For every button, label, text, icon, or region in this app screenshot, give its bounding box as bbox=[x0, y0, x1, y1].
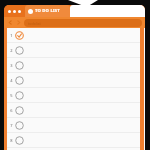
button[interactable]: 3 bbox=[7, 58, 141, 73]
button[interactable]: 5 bbox=[7, 88, 141, 103]
staticText: 5 bbox=[10, 93, 13, 98]
button[interactable]: 1 bbox=[7, 28, 141, 43]
button[interactable]: Back bbox=[7, 19, 14, 26]
button[interactable] bbox=[70, 5, 145, 17]
button[interactable]: 2 bbox=[7, 43, 141, 58]
staticText: 6 bbox=[10, 108, 13, 113]
staticText: todolist bbox=[28, 21, 41, 26]
staticText: TO DO LIST bbox=[35, 8, 60, 14]
button[interactable]: Mark task done bbox=[15, 136, 24, 145]
button[interactable]: Mark task done bbox=[15, 91, 24, 100]
button[interactable]: 6 bbox=[7, 103, 141, 118]
button[interactable]: Mark task done bbox=[15, 61, 24, 70]
button[interactable]: 4 bbox=[7, 73, 141, 88]
button[interactable]: Mark task done bbox=[15, 121, 24, 130]
staticText: 1 bbox=[10, 33, 13, 38]
button[interactable]: TO DO LIST bbox=[25, 5, 70, 17]
staticText: 2 bbox=[10, 48, 13, 53]
button[interactable]: 7 bbox=[7, 118, 141, 133]
button[interactable]: 8 bbox=[7, 133, 141, 148]
staticText: 7 bbox=[10, 123, 13, 128]
staticText: 4 bbox=[10, 78, 13, 83]
button[interactable]: Mark task done bbox=[15, 106, 24, 115]
button[interactable]: Mark task done bbox=[15, 46, 24, 55]
button[interactable]: Mark task done bbox=[15, 76, 24, 85]
staticText: 8 bbox=[10, 138, 13, 143]
staticText: 3 bbox=[10, 63, 13, 68]
button[interactable]: Forward bbox=[15, 19, 22, 26]
button[interactable]: Completed task bbox=[15, 31, 24, 40]
